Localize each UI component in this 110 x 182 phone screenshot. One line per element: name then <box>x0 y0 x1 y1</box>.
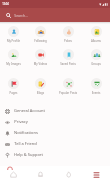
staticText: Groups <box>82 62 110 66</box>
staticText: Privacy <box>14 119 28 124</box>
button[interactable]: General Account <box>0 105 110 116</box>
button[interactable]: Following <box>27 26 54 43</box>
button[interactable]: Notifications <box>0 127 110 138</box>
button[interactable]: Help & Support <box>0 149 110 160</box>
button[interactable]: Notifications <box>27 166 54 182</box>
staticText: Tell a Friend <box>14 141 37 146</box>
button[interactable]: Blogs <box>27 78 54 95</box>
button[interactable]: My Profile <box>0 26 27 43</box>
staticText: Pokes <box>54 39 82 43</box>
staticText: Following <box>27 39 54 43</box>
button[interactable]: Home <box>0 166 27 182</box>
button[interactable]: Events <box>82 78 110 95</box>
button[interactable]: Saved Posts <box>54 49 82 66</box>
button[interactable]: Privacy <box>0 116 110 127</box>
staticText: Events <box>82 91 110 95</box>
staticText: My Profile <box>0 39 27 43</box>
button[interactable]: Menu <box>82 166 110 182</box>
staticText: Help & Support <box>14 152 43 157</box>
staticText: General Account <box>14 108 45 113</box>
staticText: Saved Posts <box>54 62 82 66</box>
button[interactable]: My Videos <box>27 49 54 66</box>
staticText: Notifications <box>14 130 38 135</box>
staticText: Search... <box>14 13 28 18</box>
button[interactable]: Popular Posts <box>54 78 82 95</box>
button[interactable]: Groups <box>82 49 110 66</box>
staticText: Popular Posts <box>54 91 82 95</box>
button[interactable]: Tell a Friend <box>0 138 110 149</box>
button[interactable]: Albums <box>82 26 110 43</box>
button[interactable]: Pages <box>0 78 27 95</box>
staticText: 13:04 <box>2 2 9 6</box>
staticText: My Videos <box>27 62 54 66</box>
button[interactable]: My Images <box>0 49 27 66</box>
staticText: Blogs <box>27 91 54 95</box>
button[interactable]: Search <box>4 11 12 19</box>
staticText: Albums <box>82 39 110 43</box>
button[interactable]: Trending <box>54 166 82 182</box>
staticText: My Images <box>0 62 27 66</box>
button[interactable]: Pokes <box>54 26 82 43</box>
staticText: Pages <box>0 91 27 95</box>
